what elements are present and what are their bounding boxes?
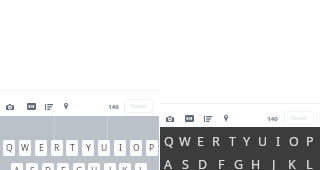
- staticText: Y: [243, 133, 251, 150]
- button[interactable]: W: [179, 132, 191, 150]
- button[interactable]: Y: [82, 140, 94, 156]
- button[interactable]: L: [135, 163, 147, 170]
- button[interactable]: D: [197, 155, 209, 170]
- staticText: U: [101, 142, 108, 154]
- staticText: J: [109, 165, 112, 170]
- button[interactable]: P: [146, 140, 158, 156]
- staticText: S: [182, 156, 189, 170]
- staticText: Tweet: [290, 114, 308, 122]
- button[interactable]: L: [303, 155, 315, 170]
- staticText: H: [91, 165, 98, 170]
- staticText: A: [14, 165, 20, 170]
- staticText: F: [218, 156, 225, 170]
- button[interactable]: A: [162, 155, 174, 170]
- staticText: L: [139, 165, 144, 170]
- button[interactable]: R: [210, 132, 222, 150]
- button[interactable]: Add poll: [199, 110, 217, 128]
- button[interactable]: H: [88, 163, 100, 170]
- button[interactable]: Q: [3, 140, 15, 156]
- button[interactable]: Tweet: [284, 111, 314, 125]
- button[interactable]: O: [288, 132, 300, 150]
- button[interactable]: Add poll: [40, 98, 58, 116]
- staticText: P: [149, 142, 155, 154]
- button[interactable]: A: [11, 163, 23, 170]
- button[interactable]: E: [35, 140, 47, 156]
- staticText: K: [122, 165, 128, 170]
- staticText: I: [276, 133, 281, 150]
- button[interactable]: I: [114, 140, 126, 156]
- button[interactable]: K: [119, 163, 131, 170]
- staticText: 140: [108, 103, 119, 111]
- button[interactable]: R: [51, 140, 63, 156]
- button[interactable]: Add GIF: [22, 98, 40, 116]
- staticText: E: [197, 133, 204, 150]
- staticText: E: [39, 142, 44, 154]
- staticText: T: [70, 142, 75, 154]
- button[interactable]: Add GIF: [180, 110, 198, 128]
- staticText: 140: [267, 115, 278, 123]
- button[interactable]: Tweet: [124, 99, 153, 113]
- button[interactable]: F: [215, 155, 227, 170]
- button[interactable]: T: [66, 140, 78, 156]
- staticText: L: [306, 156, 313, 170]
- button[interactable]: S: [26, 163, 38, 170]
- staticText: P: [306, 133, 314, 150]
- button[interactable]: P: [304, 132, 316, 150]
- staticText: W: [179, 133, 191, 150]
- staticText: A: [164, 156, 172, 170]
- button[interactable]: Q: [163, 132, 175, 150]
- button[interactable]: F: [57, 163, 69, 170]
- staticText: S: [30, 165, 35, 170]
- button[interactable]: W: [19, 140, 31, 156]
- staticText: R: [212, 133, 220, 150]
- button[interactable]: D: [42, 163, 54, 170]
- button[interactable]: J: [104, 163, 116, 170]
- button[interactable]: Add photo: [161, 110, 179, 128]
- button[interactable]: H: [250, 155, 262, 170]
- button[interactable]: Add photo: [1, 98, 19, 116]
- button[interactable]: K: [286, 155, 298, 170]
- button[interactable]: G: [73, 163, 85, 170]
- staticText: U: [258, 133, 268, 150]
- button[interactable]: S: [179, 155, 191, 170]
- button[interactable]: E: [194, 132, 206, 150]
- staticText: O: [133, 142, 140, 154]
- staticText: G: [234, 156, 244, 170]
- staticText: W: [21, 142, 29, 154]
- button[interactable]: Add location: [57, 98, 75, 116]
- staticText: H: [251, 156, 261, 170]
- button[interactable]: O: [130, 140, 142, 156]
- staticText: Y: [86, 142, 91, 154]
- button[interactable]: U: [98, 140, 110, 156]
- staticText: D: [198, 156, 208, 170]
- button[interactable]: T: [226, 132, 238, 150]
- button[interactable]: I: [272, 132, 284, 150]
- staticText: J: [272, 156, 276, 170]
- staticText: Q: [164, 133, 174, 150]
- staticText: Q: [6, 142, 13, 154]
- staticText: G: [76, 165, 83, 170]
- button[interactable]: U: [257, 132, 269, 150]
- staticText: F: [61, 165, 66, 170]
- staticText: D: [45, 165, 52, 170]
- staticText: K: [288, 156, 296, 170]
- staticText: I: [119, 142, 122, 154]
- staticText: O: [289, 133, 299, 150]
- staticText: Tweet: [130, 102, 148, 110]
- button[interactable]: Y: [241, 132, 253, 150]
- button[interactable]: G: [233, 155, 245, 170]
- staticText: R: [54, 142, 60, 154]
- button[interactable]: J: [268, 155, 280, 170]
- button[interactable]: Add location: [217, 110, 235, 128]
- staticText: T: [229, 133, 236, 150]
